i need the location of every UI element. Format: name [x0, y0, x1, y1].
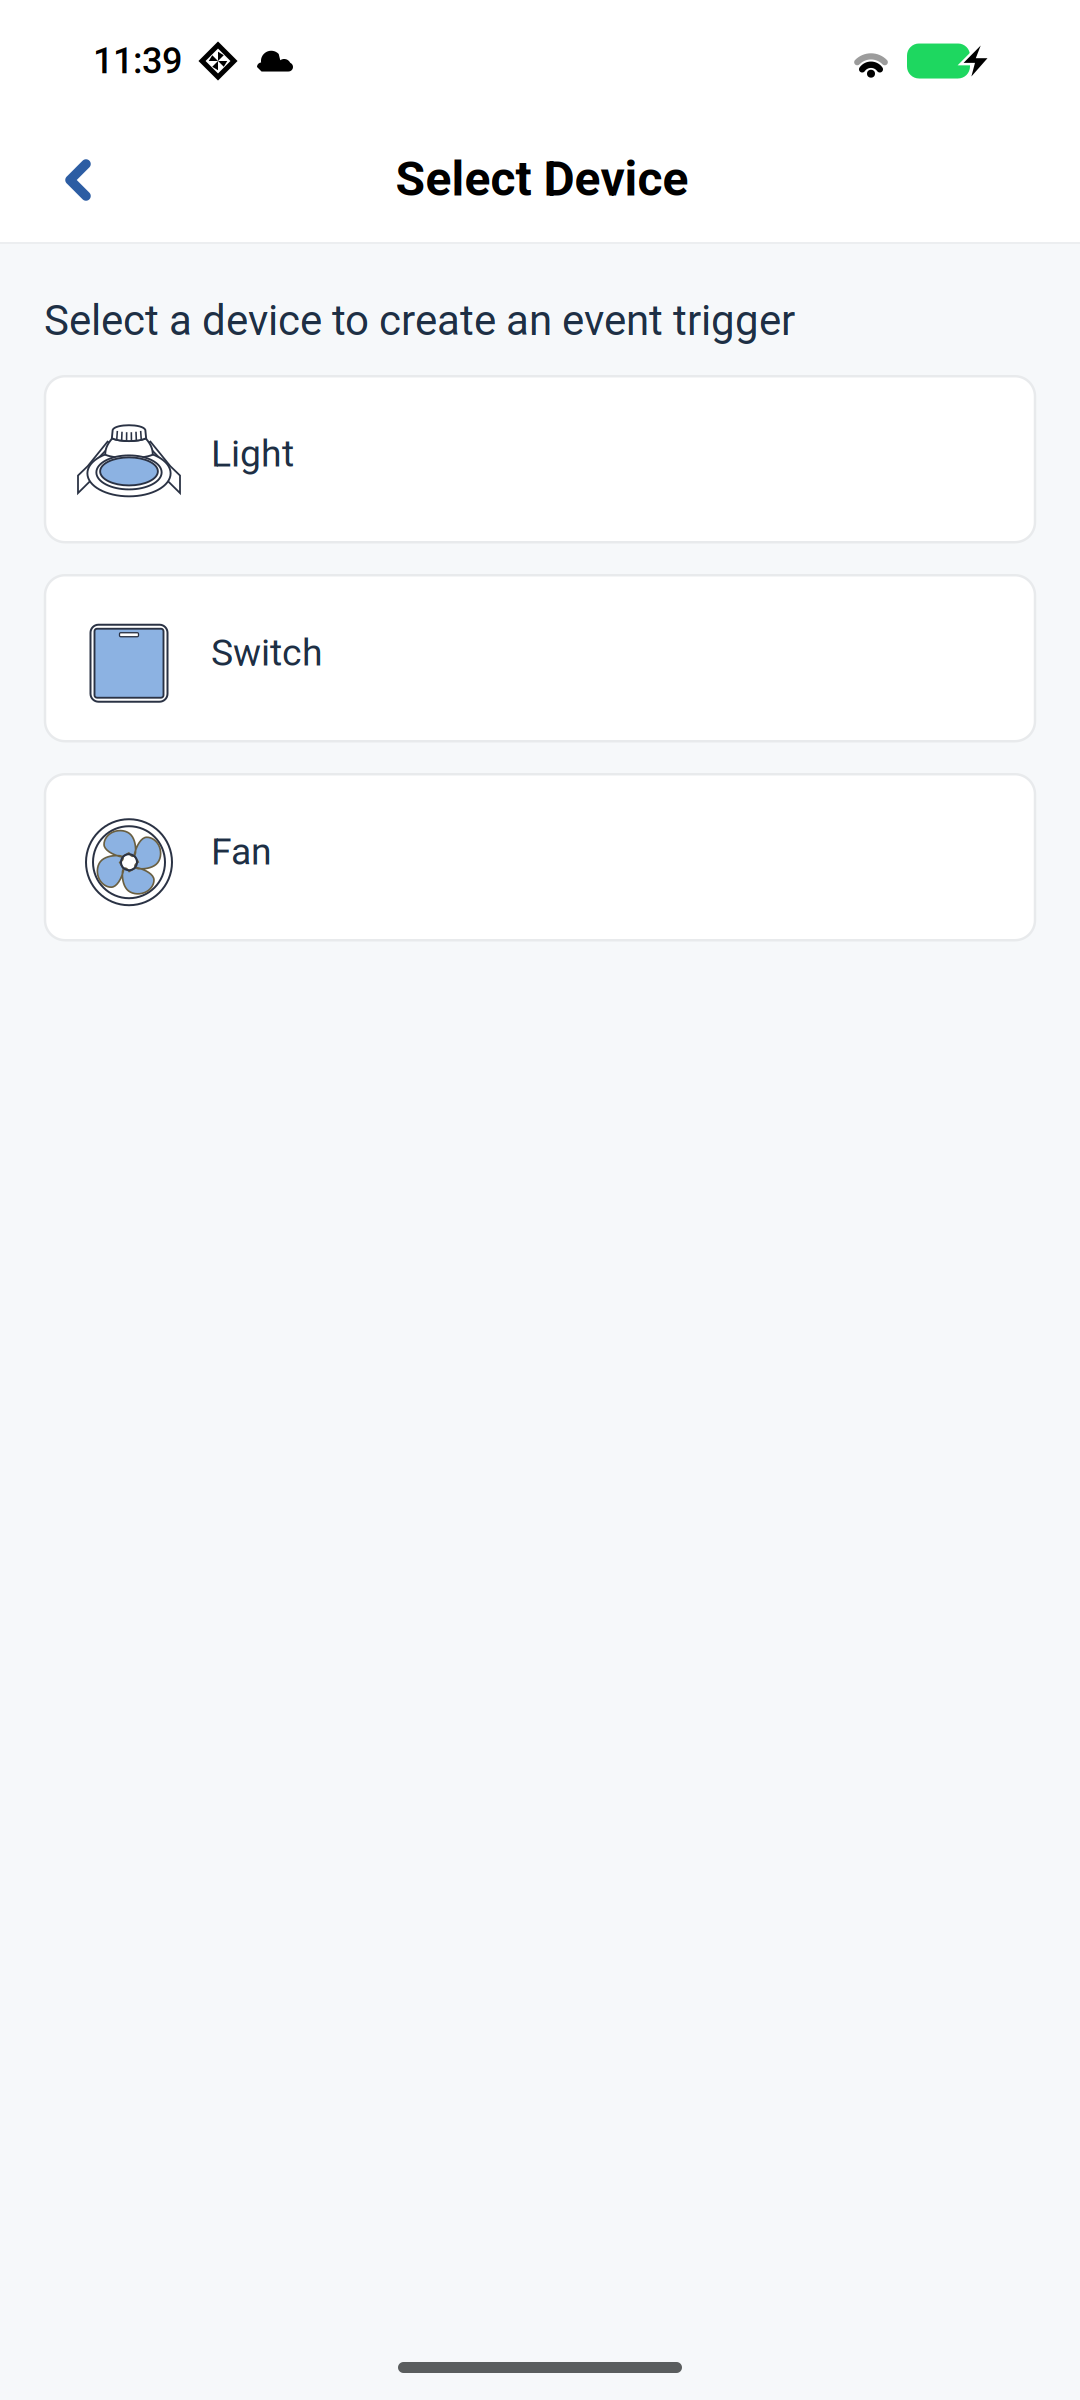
staticText: Switch	[211, 631, 323, 674]
staticText: Select Device	[395, 151, 688, 207]
button[interactable]: Switch	[45, 575, 1035, 741]
staticText: Light	[211, 432, 294, 475]
staticText: Fan	[211, 830, 272, 873]
button[interactable]: Back	[44, 140, 112, 224]
staticText: 11:39	[93, 40, 182, 82]
button[interactable]: Light	[45, 376, 1035, 542]
button[interactable]: Fan	[45, 774, 1035, 940]
staticText: Select a device to create an event trigg…	[44, 296, 795, 345]
